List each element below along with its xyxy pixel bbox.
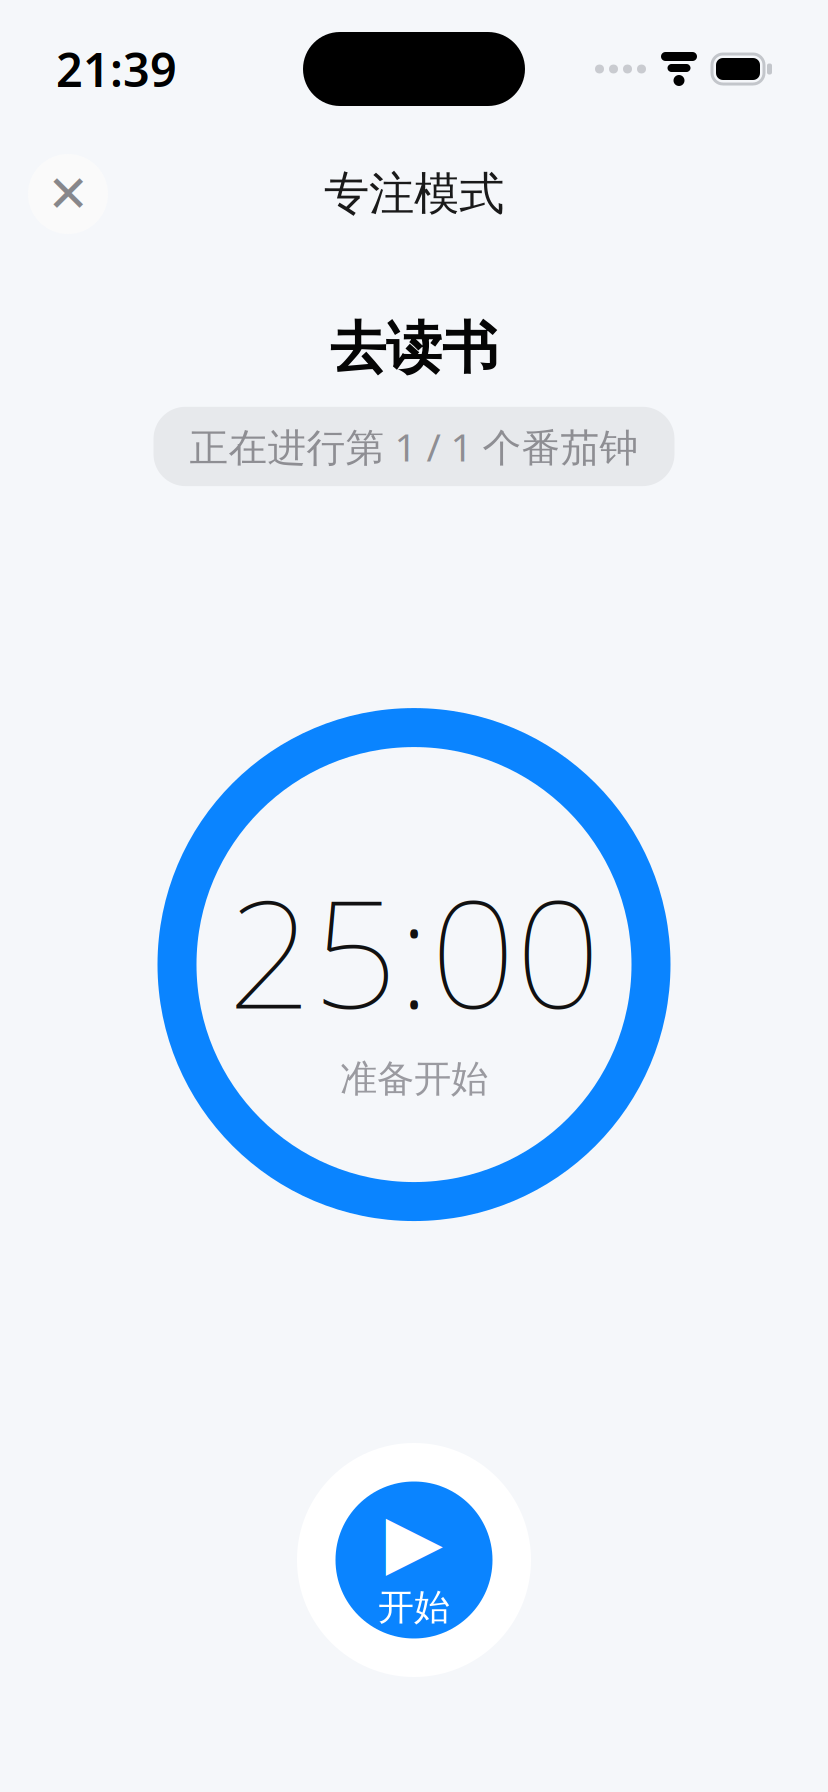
staticText: 正在进行第 1 / 1 个番茄钟 (189, 421, 638, 472)
staticText: 准备开始 (340, 1056, 488, 1102)
button[interactable]: 关闭 (28, 154, 108, 234)
staticText: ✕ (47, 165, 89, 223)
staticText: ▶ (385, 1498, 442, 1583)
staticText: 25:00 (227, 851, 600, 1050)
button[interactable]: ▶ (297, 1443, 531, 1677)
staticText: 开始 (378, 1585, 450, 1629)
staticText: 专注模式 (324, 166, 504, 222)
staticText: 去读书 (330, 314, 498, 383)
staticText: 21:39 (56, 38, 177, 100)
